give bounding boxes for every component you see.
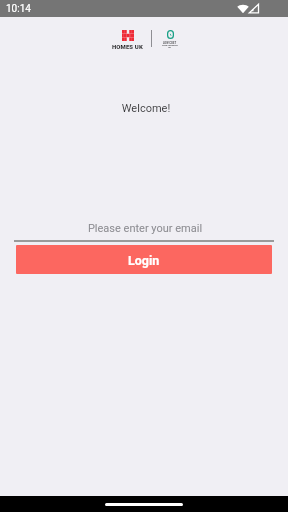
button[interactable]: Login	[16, 245, 272, 274]
staticText: Please enter your email	[15, 222, 275, 235]
staticText: Login	[128, 253, 160, 268]
button[interactable]: Email input field	[14, 215, 274, 242]
staticText: HOME OWNERSHIP	[162, 44, 178, 46]
staticText: 10:14	[6, 3, 31, 15]
staticText: UK	[168, 46, 172, 49]
staticText: LOW COST	[163, 41, 177, 44]
staticText: Welcome!	[2, 102, 288, 115]
staticText: HOMES UK	[112, 43, 143, 50]
